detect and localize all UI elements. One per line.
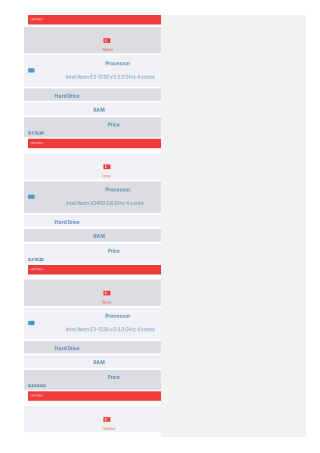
staticText: RAM (93, 233, 104, 239)
staticText: İzmir (102, 174, 110, 178)
button[interactable]: See Details (28, 391, 161, 401)
button[interactable]: See Details (28, 265, 161, 274)
staticText: Price (108, 374, 120, 380)
staticText: Hard Drive (54, 346, 79, 351)
staticText: Processor (105, 61, 130, 66)
staticText: Bursa (102, 300, 111, 304)
staticText: RAM (93, 360, 104, 365)
staticText: $376.20 (28, 131, 44, 136)
staticText: Intel Xeon X3450 2.6 GHz 4 cores (66, 200, 144, 206)
staticText: Ankara (102, 47, 113, 52)
button[interactable]: See Details (28, 15, 161, 24)
staticText: İstanbul (102, 426, 115, 431)
staticText: RAM (93, 107, 104, 113)
staticText: Price (108, 122, 120, 128)
staticText: Processor (105, 187, 130, 193)
staticText: Price (108, 248, 120, 254)
staticText: $376.20 (28, 257, 44, 262)
staticText: See Details (30, 394, 43, 397)
staticText: See Details (30, 141, 43, 144)
staticText: $405.00 (28, 383, 46, 388)
staticText: See Details (30, 268, 43, 271)
button[interactable]: See Details (28, 139, 161, 148)
staticText: Hard Drive (54, 93, 79, 99)
staticText: Intel Xeon E3-1230 v3 3.3 GHz 4 cores (66, 74, 155, 80)
staticText: Hard Drive (54, 219, 79, 225)
staticText: Processor (105, 313, 130, 319)
staticText: See Details (30, 18, 43, 21)
staticText: Intel Xeon E3-1230 v3 3.3 GHz 4 cores (66, 327, 155, 332)
